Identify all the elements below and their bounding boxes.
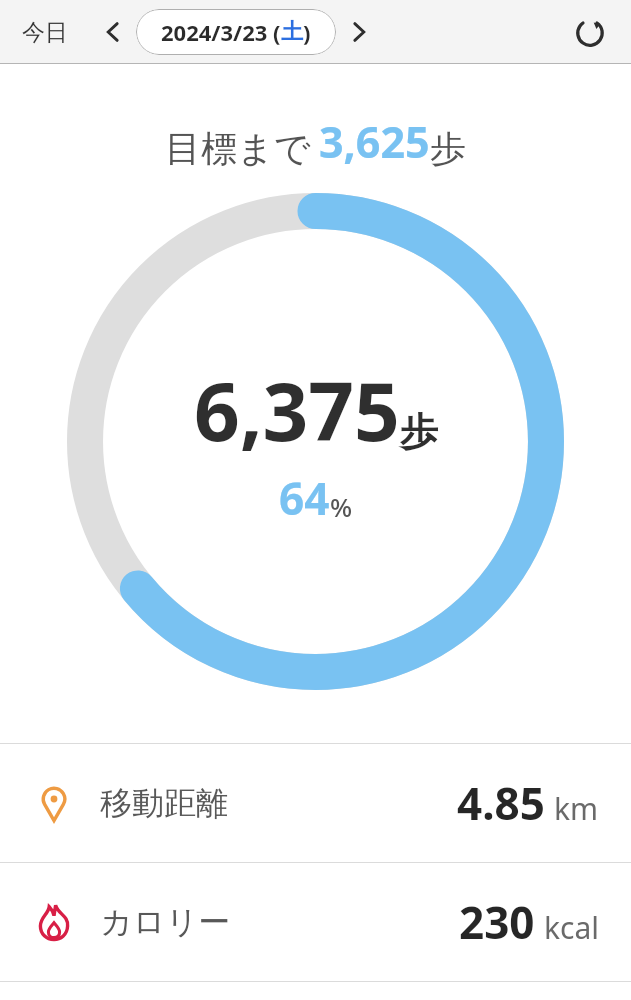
staticText: 3,625 [319,112,430,171]
button[interactable]: Refresh [563,5,617,59]
button[interactable]: カロリー [0,863,631,981]
staticText: 土 [281,18,303,46]
staticText: kcal [544,907,599,948]
staticText: 2024/3/23 ( [161,17,281,47]
staticText: 今日 [22,18,68,47]
button[interactable]: Previous day [90,9,136,55]
staticText: 4.85 [457,773,545,833]
staticText: 6,375 [194,355,400,464]
staticText: 64 [279,468,330,528]
button[interactable]: Next day [336,9,382,55]
staticText: % [330,489,353,524]
staticText: 230 [459,892,535,952]
staticText: 移動距離 [100,783,228,823]
staticText: カロリー [100,902,231,942]
staticText: 歩 [400,408,438,456]
staticText: 目標まで [165,126,311,171]
staticText: 歩 [430,126,466,171]
staticText: km [554,788,599,829]
button[interactable]: 今日 [10,12,80,53]
staticText: ) [303,17,311,47]
button[interactable]: 2024/3/23 ( [136,9,336,55]
button[interactable]: 移動距離 [0,744,631,862]
